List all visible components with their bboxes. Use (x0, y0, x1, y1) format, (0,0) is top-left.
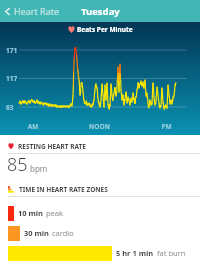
button[interactable]: RESTING HEART RATE (0, 135, 200, 183)
staticText: bpm (30, 163, 48, 174)
staticText: peak (46, 208, 64, 218)
staticText: AM (0, 122, 66, 131)
staticText: cardio (52, 228, 74, 238)
staticText: 30 min (24, 228, 49, 238)
staticText: Tuesday (81, 5, 120, 18)
staticText: Beats Per Minute (77, 25, 133, 34)
button[interactable]: 30 min (0, 223, 200, 243)
staticText: fat burn (157, 248, 186, 258)
other: Back (3, 7, 12, 16)
staticText: Heart Rate (14, 5, 60, 17)
button[interactable]: 10 min (0, 203, 200, 223)
staticText: TIME IN HEART RATE ZONES (19, 185, 108, 194)
staticText: NOON (66, 122, 133, 131)
staticText: 10 min (18, 208, 43, 218)
button[interactable]: Back (0, 3, 66, 19)
staticText: 5 hr 1 min (116, 248, 154, 258)
staticText: RESTING HEART RATE (18, 142, 86, 151)
button[interactable]: 5 hr 1 min (0, 243, 200, 263)
staticText: 117 (6, 74, 18, 83)
staticText: 85 (7, 152, 28, 177)
staticText: 63 (6, 103, 14, 112)
staticText: 171 (6, 46, 18, 55)
staticText: PM (133, 122, 200, 131)
